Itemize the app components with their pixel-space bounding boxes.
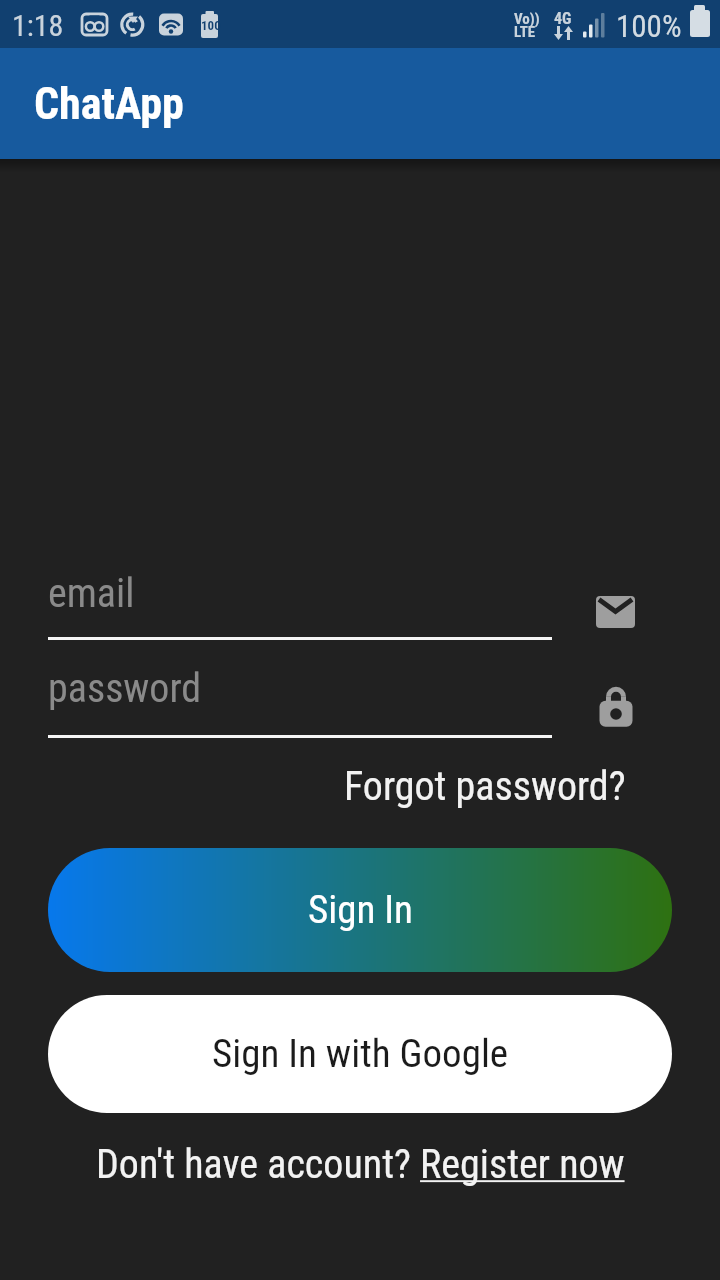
button[interactable]: Forgot password? bbox=[344, 763, 626, 810]
staticText: Vo)) bbox=[514, 10, 540, 28]
staticText: 100% bbox=[616, 8, 682, 44]
staticText: 100 bbox=[201, 18, 221, 33]
staticText: 4G bbox=[554, 9, 572, 28]
button[interactable]: Don't have account? Register now bbox=[96, 1141, 625, 1188]
staticText: email bbox=[48, 570, 135, 617]
staticText: 1:18 bbox=[12, 8, 64, 43]
button[interactable]: Sign In with Google bbox=[48, 995, 672, 1113]
staticText: password bbox=[48, 665, 202, 712]
staticText: Sign In with Google bbox=[212, 1031, 509, 1077]
staticText: Sign In bbox=[308, 887, 413, 933]
button[interactable]: password bbox=[48, 665, 552, 727]
staticText: ChatApp bbox=[34, 78, 184, 130]
button[interactable]: email bbox=[48, 570, 552, 632]
button[interactable]: Sign In bbox=[48, 848, 672, 972]
staticText: LTE bbox=[514, 23, 536, 41]
